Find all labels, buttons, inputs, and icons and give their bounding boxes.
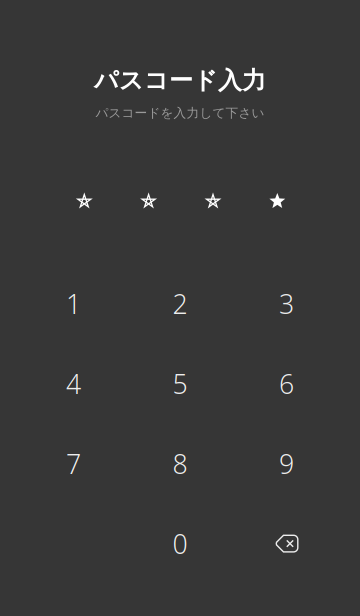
button[interactable]: 6 — [236, 351, 336, 417]
staticText: 7 — [66, 445, 81, 482]
staticText: 0 — [172, 525, 187, 562]
button[interactable]: 2 — [130, 271, 230, 337]
staticText: 3 — [279, 285, 294, 322]
button[interactable]: 7 — [23, 431, 123, 497]
button[interactable]: 0 — [130, 511, 230, 577]
staticText: 8 — [172, 445, 187, 482]
staticText: パスコードを入力して下さい — [95, 105, 264, 121]
button[interactable]: 3 — [236, 271, 336, 337]
button[interactable]: 5 — [130, 351, 230, 417]
staticText: 6 — [279, 365, 294, 402]
staticText: パスコード入力 — [94, 65, 266, 96]
staticText: 4 — [66, 365, 81, 402]
staticText: 1 — [66, 285, 81, 322]
button[interactable]: Delete — [236, 511, 336, 577]
button[interactable]: 1 — [23, 271, 123, 337]
staticText: 5 — [172, 365, 187, 402]
staticText: 2 — [172, 285, 187, 322]
button[interactable]: 9 — [236, 431, 336, 497]
button[interactable]: 4 — [23, 351, 123, 417]
staticText: 9 — [279, 445, 294, 482]
button[interactable]: 8 — [130, 431, 230, 497]
